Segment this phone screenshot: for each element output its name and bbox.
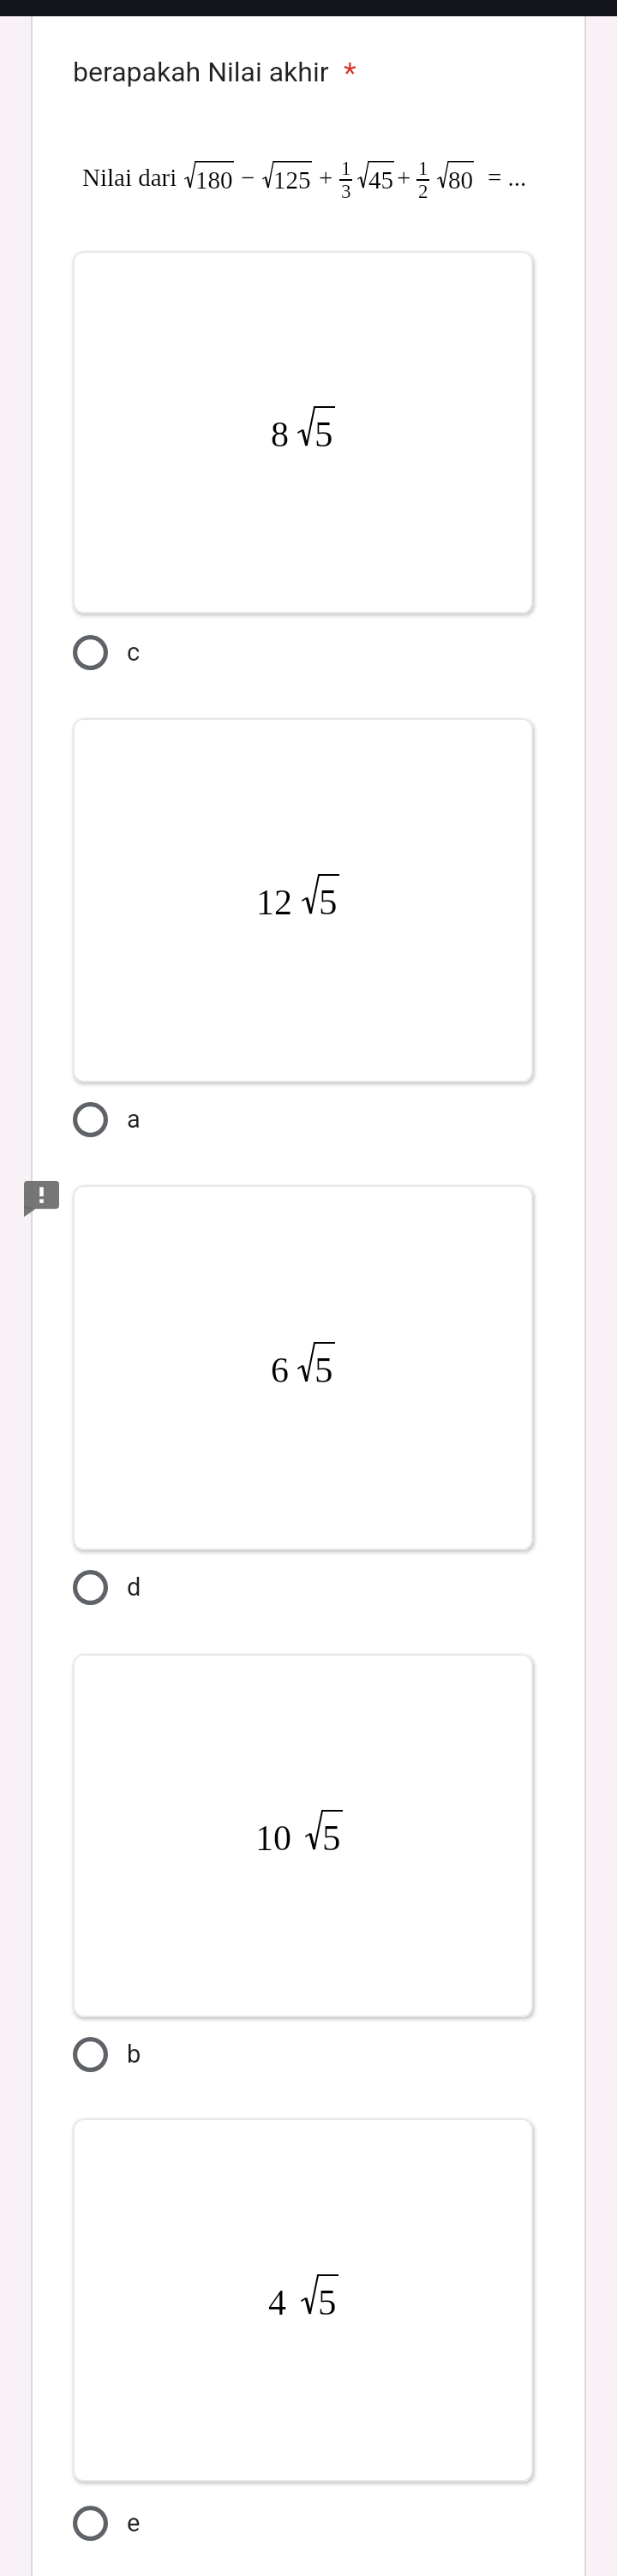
- staticText: 5: [318, 2282, 337, 2323]
- staticText: 125: [273, 166, 311, 194]
- button[interactable]: e: [32, 2496, 584, 2549]
- button[interactable]: d: [32, 1561, 584, 1614]
- button[interactable]: Option image 8 root 5: [73, 251, 533, 614]
- staticText: 5: [314, 1350, 333, 1391]
- button[interactable]: Option image 12 root 5: [73, 718, 533, 1082]
- staticText: Nilai dari: [82, 164, 177, 191]
- staticText: b: [127, 2040, 141, 2069]
- staticText: 3: [341, 181, 351, 202]
- staticText: 6: [271, 1351, 289, 1391]
- staticText: +: [319, 164, 333, 191]
- staticText: 5: [319, 882, 338, 923]
- staticText: 12: [256, 883, 292, 923]
- staticText: 4: [268, 2283, 286, 2323]
- button[interactable]: Option image 4 root 5: [73, 2118, 533, 2482]
- staticText: +: [397, 164, 411, 191]
- staticText: 180: [195, 166, 233, 194]
- staticText: 80: [448, 166, 473, 194]
- staticText: 5: [322, 1818, 341, 1859]
- button[interactable]: b: [32, 2028, 584, 2081]
- staticText: 8: [271, 415, 289, 455]
- button[interactable]: Option image 10 root 5: [73, 1654, 533, 2017]
- button[interactable]: c: [32, 626, 584, 679]
- staticText: a: [127, 1105, 141, 1134]
- staticText: 5: [314, 414, 333, 455]
- staticText: 1: [418, 158, 428, 179]
- staticText: 10: [255, 1818, 291, 1859]
- staticText: d: [127, 1573, 141, 1602]
- staticText: c: [127, 638, 141, 667]
- staticText: 1: [341, 158, 351, 179]
- button[interactable]: Option image 6 root 5: [73, 1185, 533, 1550]
- staticText: −: [241, 164, 255, 191]
- button[interactable]: Comment: [24, 1181, 59, 1217]
- staticText: 2: [418, 181, 428, 202]
- staticText: *: [344, 56, 356, 90]
- staticText: = ...: [488, 164, 527, 191]
- button[interactable]: a: [32, 1093, 584, 1146]
- staticText: e: [127, 2508, 141, 2537]
- staticText: 45: [368, 166, 393, 194]
- staticText: berapakah Nilai akhir: [73, 56, 329, 88]
